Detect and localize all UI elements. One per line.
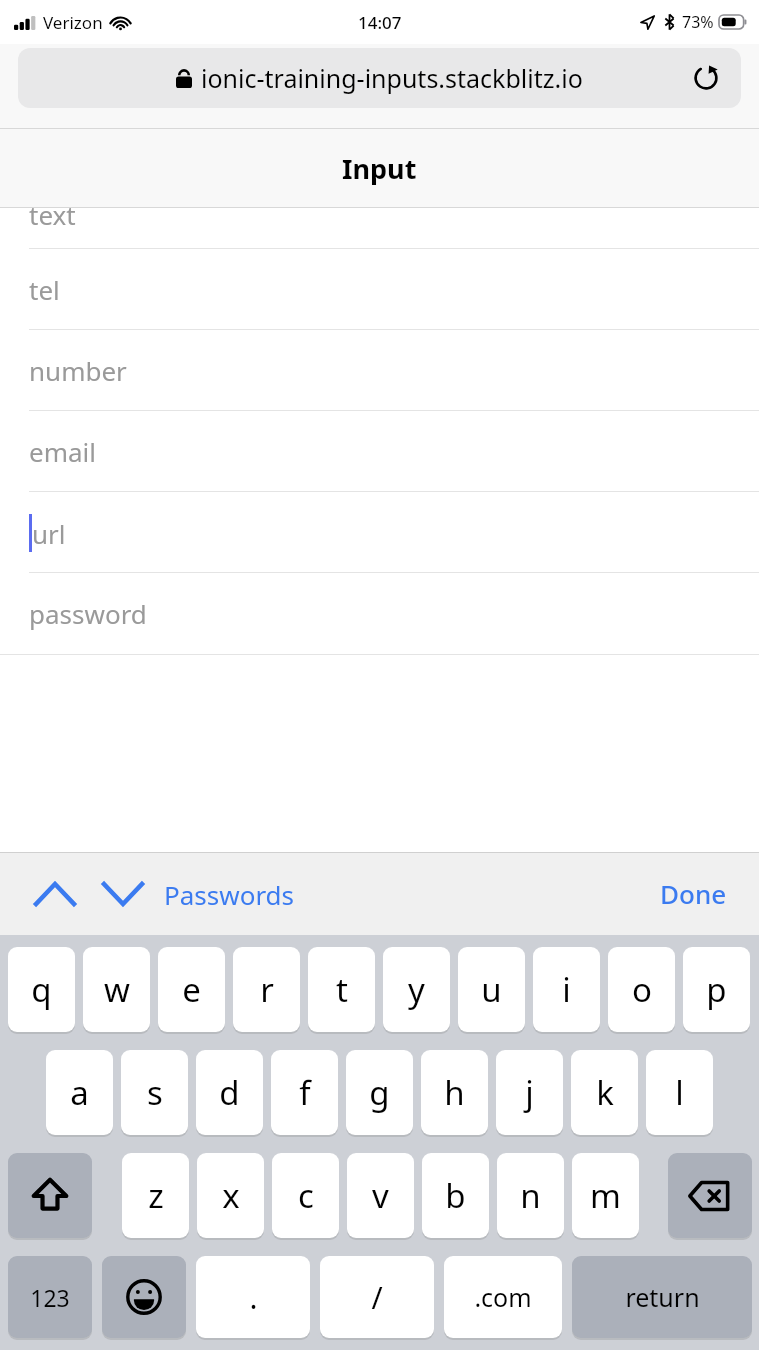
staticText: Done — [660, 876, 727, 911]
staticText: w — [104, 967, 130, 1012]
button[interactable]: y — [383, 947, 450, 1032]
staticText: ionic-training-inputs.stackblitz.io — [201, 61, 583, 95]
staticText: h — [444, 1070, 465, 1115]
staticText: number — [29, 353, 127, 388]
button[interactable]: number — [0, 330, 759, 411]
button[interactable]: g — [346, 1050, 413, 1135]
staticText: n — [520, 1173, 541, 1218]
button[interactable]: n — [497, 1153, 564, 1238]
staticText: url — [32, 516, 66, 551]
button[interactable]: r — [233, 947, 300, 1032]
staticText: Verizon — [43, 11, 103, 34]
button[interactable]: s — [121, 1050, 188, 1135]
staticText: g — [369, 1070, 390, 1115]
button[interactable]: email — [0, 411, 759, 492]
staticText: password — [29, 596, 147, 631]
staticText: i — [562, 967, 571, 1012]
staticText: tel — [29, 272, 60, 307]
staticText: 123 — [30, 1282, 70, 1313]
button[interactable]: Passwords — [162, 869, 297, 920]
staticText: o — [632, 967, 652, 1012]
button[interactable]: f — [271, 1050, 338, 1135]
staticText: y — [408, 967, 425, 1012]
staticText: c — [298, 1173, 314, 1218]
staticText: return — [625, 1280, 700, 1314]
button[interactable]: 123 — [8, 1256, 92, 1338]
staticText: q — [31, 967, 52, 1012]
staticText: Passwords — [164, 877, 295, 912]
staticText: j — [525, 1070, 534, 1115]
staticText: e — [182, 967, 201, 1012]
button[interactable]: password — [0, 573, 759, 654]
button[interactable]: . — [196, 1256, 310, 1338]
button[interactable]: w — [83, 947, 150, 1032]
button[interactable]: j — [496, 1050, 563, 1135]
staticText: k — [596, 1070, 614, 1115]
button[interactable]: h — [421, 1050, 488, 1135]
staticText: v — [372, 1173, 389, 1218]
button[interactable]: url — [0, 492, 759, 573]
staticText: / — [371, 1277, 383, 1318]
button[interactable]: text — [0, 208, 759, 249]
staticText: Input — [342, 150, 417, 187]
button[interactable]: tel — [0, 249, 759, 330]
button[interactable]: m — [572, 1153, 639, 1238]
button[interactable]: c — [272, 1153, 339, 1238]
staticText: . — [249, 1277, 258, 1318]
staticText: b — [445, 1173, 466, 1218]
staticText: .com — [474, 1280, 532, 1314]
button[interactable]: a — [46, 1050, 113, 1135]
button[interactable]: Previous field — [28, 867, 82, 921]
staticText: r — [260, 967, 274, 1012]
button[interactable]: o — [608, 947, 675, 1032]
button[interactable]: Shift — [8, 1153, 92, 1238]
button[interactable]: return — [572, 1256, 752, 1338]
button[interactable]: t — [308, 947, 375, 1032]
staticText: a — [70, 1070, 89, 1115]
staticText: s — [147, 1070, 163, 1115]
button[interactable]: p — [683, 947, 750, 1032]
button[interactable]: i — [533, 947, 600, 1032]
button[interactable]: u — [458, 947, 525, 1032]
staticText: 73% — [682, 11, 714, 33]
button[interactable]: z — [122, 1153, 189, 1238]
staticText: 14:07 — [358, 11, 402, 34]
staticText: text — [29, 197, 76, 232]
button[interactable]: .com — [444, 1256, 562, 1338]
button[interactable]: Emoji — [102, 1256, 186, 1338]
button[interactable]: d — [196, 1050, 263, 1135]
button[interactable]: Done — [654, 868, 733, 919]
staticText: l — [675, 1070, 684, 1115]
button[interactable]: Delete — [668, 1153, 752, 1238]
staticText: p — [706, 967, 727, 1012]
staticText: u — [481, 967, 502, 1012]
button[interactable]: k — [571, 1050, 638, 1135]
button[interactable]: / — [320, 1256, 434, 1338]
staticText: z — [148, 1173, 164, 1218]
button[interactable]: e — [158, 947, 225, 1032]
staticText: t — [336, 967, 348, 1012]
button[interactable]: Reload — [687, 59, 725, 97]
button[interactable]: b — [422, 1153, 489, 1238]
button[interactable]: Next field — [96, 867, 150, 921]
button[interactable]: v — [347, 1153, 414, 1238]
button[interactable]: ionic-training-inputs.stackblitz.io — [18, 48, 741, 108]
staticText: f — [299, 1070, 311, 1115]
staticText: d — [219, 1070, 240, 1115]
button[interactable]: q — [8, 947, 75, 1032]
staticText: email — [29, 434, 96, 469]
button[interactable]: l — [646, 1050, 713, 1135]
staticText: m — [590, 1173, 621, 1218]
button[interactable]: x — [197, 1153, 264, 1238]
staticText: x — [222, 1173, 240, 1218]
